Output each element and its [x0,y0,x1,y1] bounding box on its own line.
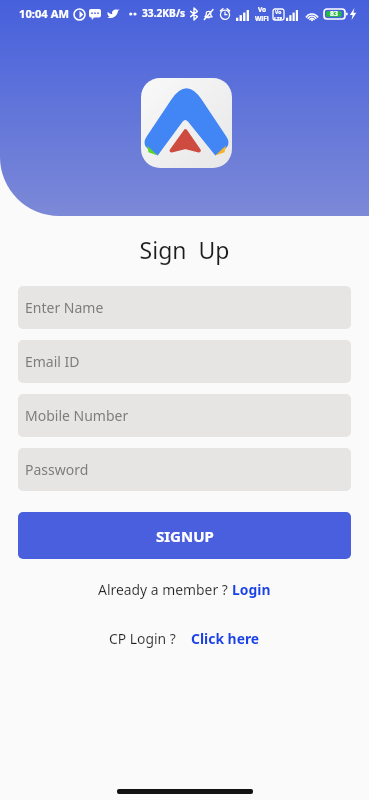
staticText: Already a member ? [98,580,232,599]
staticText: Vo [275,9,282,16]
button[interactable]: Click here [191,629,260,648]
staticText: CP Login ? [109,629,191,648]
staticText: Password [25,460,89,479]
button[interactable]: Enter Name [18,286,351,329]
staticText: 83 [330,9,339,19]
staticText: LTE [274,16,283,20]
staticText: Email ID [25,352,80,371]
button[interactable]: Password [18,448,351,491]
staticText: 10:04 AM [19,6,69,21]
staticText: Vo [258,5,267,14]
staticText: Sign Up [0,234,369,265]
button[interactable]: Login [232,580,271,599]
staticText: Login [232,580,271,599]
staticText: 33.2KB/s [142,6,186,20]
button[interactable]: Email ID [18,340,351,383]
staticText: Enter Name [25,298,104,317]
button[interactable]: SIGNUP [18,512,351,559]
staticText: Click here [191,629,260,648]
button[interactable]: Mobile Number [18,394,351,437]
staticText: SIGNUP [156,526,214,546]
staticText: Mobile Number [25,406,129,425]
staticText: WiFi [255,14,269,23]
